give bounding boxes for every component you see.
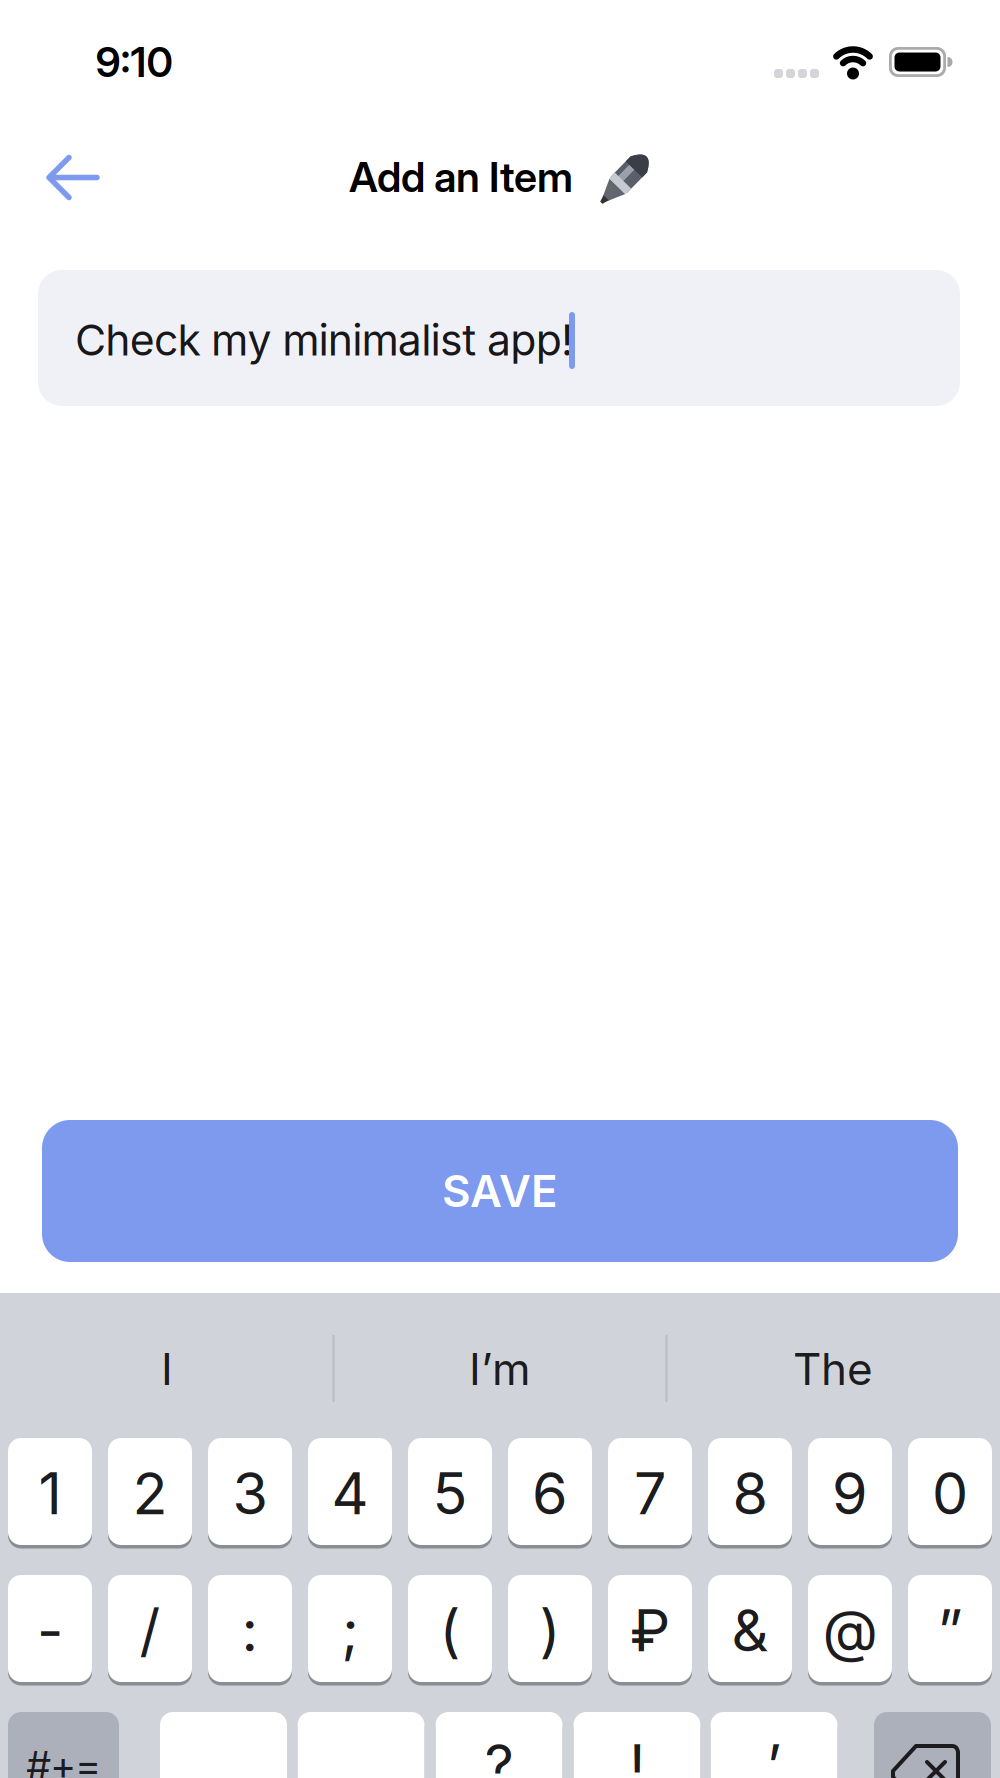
button[interactable]: 7: [608, 1438, 692, 1545]
button[interactable]: 9: [808, 1438, 892, 1545]
staticText: I’m: [469, 1342, 531, 1396]
button[interactable]: -: [8, 1575, 92, 1682]
button[interactable]: The: [673, 1314, 993, 1424]
button[interactable]: ?: [435, 1712, 562, 1778]
staticText: 6: [532, 1459, 568, 1528]
staticText: 9: [832, 1459, 868, 1528]
staticText: ₽: [630, 1596, 670, 1665]
staticText: ?: [484, 1731, 513, 1778]
button[interactable]: 2: [108, 1438, 192, 1545]
button[interactable]: Back: [42, 145, 106, 209]
button[interactable]: 1: [8, 1438, 92, 1545]
button[interactable]: @: [808, 1575, 892, 1682]
staticText: ’: [766, 1731, 781, 1778]
button[interactable]: !: [573, 1712, 700, 1778]
button[interactable]: I’m: [340, 1314, 660, 1424]
staticText: I: [161, 1342, 173, 1396]
staticText: 2: [132, 1459, 167, 1528]
staticText: 4: [331, 1459, 368, 1528]
staticText: 0: [932, 1459, 968, 1528]
button[interactable]: ₽: [608, 1575, 692, 1682]
staticText: The: [793, 1342, 873, 1396]
button[interactable]: /: [108, 1575, 192, 1682]
staticText: -: [37, 1596, 63, 1665]
staticText: !: [629, 1731, 645, 1778]
button[interactable]: 5: [408, 1438, 492, 1545]
button[interactable]: (: [408, 1575, 492, 1682]
staticText: :: [241, 1596, 258, 1665]
staticText: Check my minimalist app!: [75, 314, 573, 366]
button[interactable]: 4: [308, 1438, 392, 1545]
button[interactable]: 3: [208, 1438, 292, 1545]
staticText: (: [439, 1596, 460, 1665]
button[interactable]: 6: [508, 1438, 592, 1545]
staticText: 5: [432, 1459, 467, 1528]
staticText: 7: [634, 1459, 666, 1528]
button[interactable]: &: [708, 1575, 792, 1682]
staticText: /: [139, 1596, 160, 1665]
staticText: ;: [341, 1596, 358, 1665]
staticText: Add an Item: [349, 152, 573, 202]
button[interactable]: Save: [42, 1120, 958, 1262]
button[interactable]: 0: [908, 1438, 992, 1545]
button[interactable]: #+=: [8, 1712, 119, 1778]
staticText: &: [731, 1596, 768, 1665]
button[interactable]: ): [508, 1575, 592, 1682]
button[interactable]: ’: [710, 1712, 837, 1778]
staticText: 1: [38, 1459, 61, 1528]
staticText: #+=: [26, 1741, 100, 1778]
staticText: @: [822, 1596, 877, 1665]
button[interactable]: :: [208, 1575, 292, 1682]
button[interactable]: Check my minimalist app!: [38, 270, 960, 406]
button[interactable]: 8: [708, 1438, 792, 1545]
button[interactable]: comma: [297, 1712, 424, 1778]
button[interactable]: Delete: [874, 1712, 991, 1778]
button[interactable]: ;: [308, 1575, 392, 1682]
button[interactable]: period: [160, 1712, 287, 1778]
button[interactable]: ”: [908, 1575, 992, 1682]
staticText: 8: [732, 1459, 767, 1528]
staticText: ): [539, 1596, 560, 1665]
staticText: 3: [232, 1459, 267, 1528]
staticText: 9:10: [95, 37, 172, 87]
button[interactable]: I: [7, 1314, 327, 1424]
staticText: SAVE: [442, 1164, 558, 1218]
staticText: ”: [937, 1596, 962, 1665]
